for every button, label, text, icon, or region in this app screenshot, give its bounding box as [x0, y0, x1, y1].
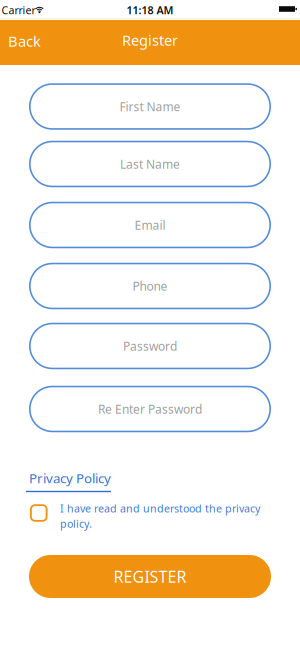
- button[interactable]: Agree to privacy policy: [30, 504, 47, 522]
- button[interactable]: REGISTER: [29, 555, 271, 598]
- button[interactable]: First Name: [29, 83, 271, 130]
- staticText: Password: [123, 338, 177, 354]
- staticText: Back: [8, 31, 41, 51]
- staticText: REGISTER: [113, 566, 186, 587]
- button[interactable]: Last Name: [29, 141, 271, 187]
- button[interactable]: Password: [29, 323, 271, 369]
- staticText: I have read and understood the privacy p…: [60, 501, 260, 531]
- staticText: Last Name: [120, 156, 180, 172]
- staticText: 11:18 AM: [126, 3, 173, 17]
- button[interactable]: Privacy Policy: [29, 469, 111, 487]
- staticText: Privacy Policy: [29, 469, 111, 487]
- staticText: Register: [122, 30, 178, 50]
- button[interactable]: Re Enter Password: [29, 386, 271, 432]
- button[interactable]: Phone: [29, 263, 271, 309]
- staticText: Email: [134, 217, 165, 233]
- button[interactable]: Back: [2, 23, 47, 59]
- button[interactable]: Email: [29, 202, 271, 248]
- staticText: Phone: [132, 278, 167, 294]
- staticText: Re Enter Password: [98, 401, 202, 417]
- staticText: First Name: [119, 98, 180, 114]
- staticText: Carrier: [1, 3, 35, 17]
